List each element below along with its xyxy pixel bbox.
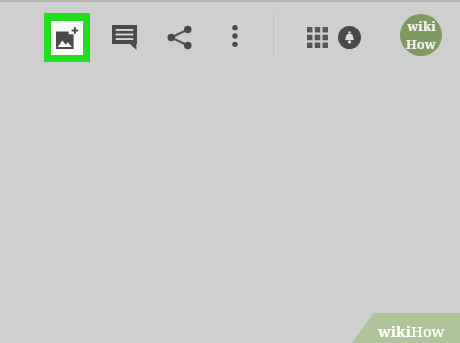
button[interactable]: Comments [104,17,144,57]
button[interactable]: Account [400,14,442,56]
button[interactable]: More options [216,17,254,55]
button[interactable]: Apps [297,17,337,57]
staticText: wiki [407,17,436,35]
button[interactable]: Share [159,17,199,57]
staticText: How [411,321,445,341]
button[interactable]: Add photo [44,13,90,62]
button[interactable]: Notifications [329,17,369,57]
staticText: wiki [378,321,411,341]
staticText: How [406,35,436,53]
